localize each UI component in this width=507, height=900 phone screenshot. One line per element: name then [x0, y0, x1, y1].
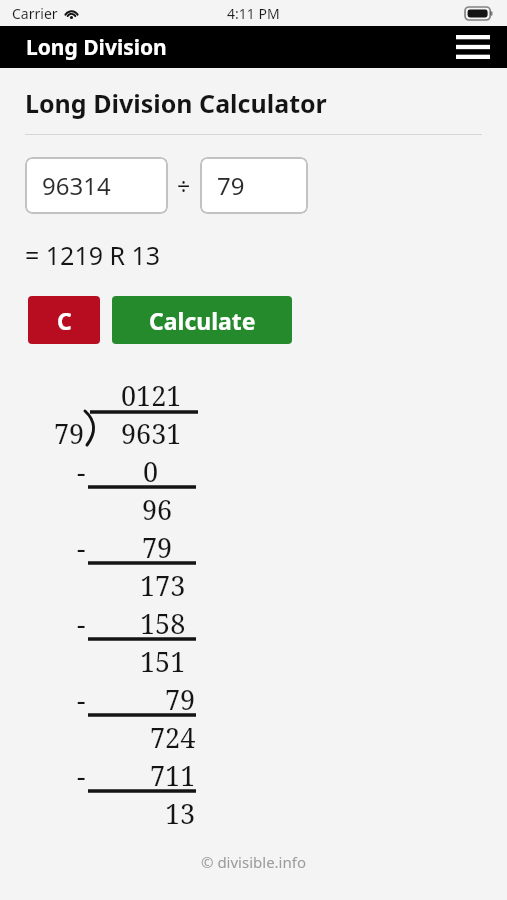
staticText: 79 — [217, 169, 245, 202]
staticText: - — [77, 453, 86, 485]
staticText: Long Division — [26, 33, 167, 62]
staticText: 13 — [165, 795, 196, 827]
staticText: 96314 — [42, 169, 111, 202]
staticText: 151 — [140, 643, 186, 675]
staticText: = 1219 R 13 — [25, 238, 161, 272]
staticText: © divisible.info — [0, 852, 507, 872]
staticText: - — [77, 529, 86, 561]
button[interactable]: Open navigation menu — [452, 26, 494, 68]
staticText: - — [77, 681, 86, 713]
staticText: 79 — [142, 529, 173, 561]
button[interactable]: 96314 — [25, 157, 168, 214]
staticText: Calculate — [149, 305, 256, 336]
button[interactable]: 79 — [200, 157, 308, 214]
staticText: C — [57, 305, 72, 336]
staticText: 724 — [150, 719, 196, 751]
button[interactable]: Calculate — [112, 296, 292, 344]
staticText: 79 — [165, 681, 196, 713]
staticText: 96314 — [121, 415, 196, 447]
staticText: 79 — [54, 415, 85, 447]
staticText: 173 — [140, 567, 186, 599]
staticText: Long Division Calculator — [25, 86, 327, 120]
staticText: 4:11 PM — [227, 4, 280, 23]
staticText: 158 — [140, 605, 186, 637]
staticText: Carrier — [12, 4, 58, 23]
staticText: - — [77, 757, 86, 789]
staticText: 96 — [142, 491, 173, 523]
staticText: - — [77, 605, 86, 637]
button[interactable]: C — [28, 296, 100, 344]
staticText: 711 — [150, 757, 196, 789]
staticText: ÷ — [177, 170, 191, 201]
staticText: 01219 — [121, 377, 196, 409]
staticText: 0 — [143, 453, 159, 485]
